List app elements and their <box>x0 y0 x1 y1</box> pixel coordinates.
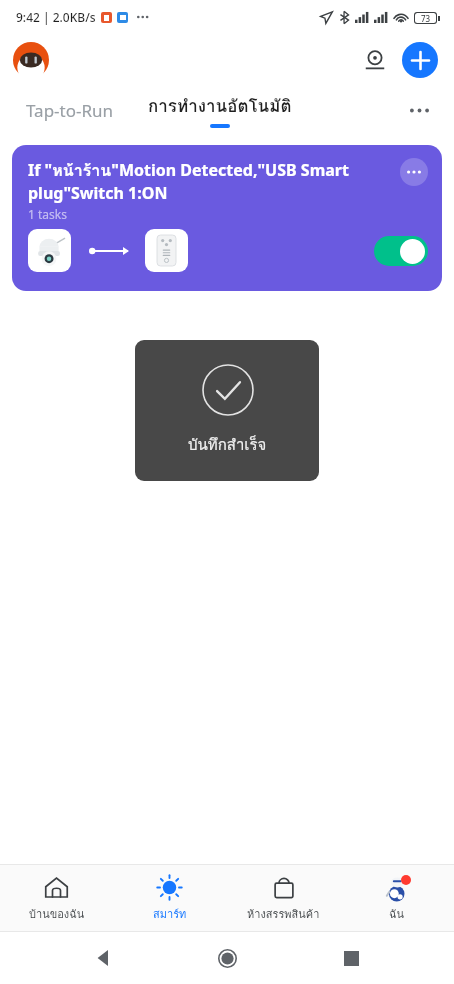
button[interactable]: สมาร์ท <box>113 865 226 931</box>
button[interactable]: การทำงานอัตโนมัติ <box>144 92 296 128</box>
button[interactable]: Scan <box>358 43 392 77</box>
staticText: 1 tasks <box>28 206 67 222</box>
staticText: บันทึกสำเร็จ <box>188 433 267 457</box>
button[interactable]: ฉัน <box>340 865 454 931</box>
button[interactable]: Card menu <box>400 158 428 186</box>
staticText: Tap-to-Run <box>26 99 114 122</box>
staticText: การทำงานอัตโนมัติ <box>148 92 292 119</box>
staticText: ห้างสรรพสินค้า <box>247 905 320 922</box>
button[interactable]: Add <box>402 42 438 78</box>
staticText: 73 <box>421 13 431 23</box>
staticText: If "หน้าร้าน"Motion Detected,"USB Smart … <box>28 158 392 204</box>
button[interactable]: Back <box>84 938 124 978</box>
staticText: บ้านของฉัน <box>29 905 85 922</box>
button[interactable]: ห้างสรรพสินค้า <box>226 865 340 931</box>
button[interactable]: Toggle automation <box>374 236 428 266</box>
button[interactable]: Recents <box>331 938 371 978</box>
button[interactable]: More options <box>402 93 436 127</box>
button[interactable]: บ้านของฉัน <box>0 865 113 931</box>
button[interactable]: App logo <box>12 41 50 79</box>
button[interactable]: If "หน้าร้าน"Motion Detected,"USB Smart … <box>12 145 442 291</box>
button[interactable]: Tap-to-Run <box>22 93 118 128</box>
button[interactable]: Home <box>207 938 247 978</box>
staticText: 9:42 | 2.0KB/s <box>16 9 96 25</box>
staticText: ฉัน <box>389 905 405 922</box>
staticText: สมาร์ท <box>153 905 187 922</box>
